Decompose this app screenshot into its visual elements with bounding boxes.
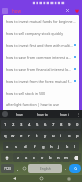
button[interactable]: q [1,131,9,140]
button[interactable]: how to invest first and then with multip… [3,39,79,51]
button[interactable]: Period [62,164,69,173]
button[interactable]: a [3,142,12,151]
staticText: y [44,133,47,139]
staticText: 8 [60,122,63,128]
button[interactable]: Comma [14,164,21,173]
staticText: how to invest first and then with multip… [6,43,73,48]
staticText: i [60,133,62,139]
button[interactable]: v [38,153,46,162]
staticText: how to invest mutual funds for beginners… [6,19,76,24]
staticText: 4 [28,122,31,128]
button[interactable]: ?123 [1,164,14,173]
button[interactable]: g [39,142,47,151]
button[interactable]: 2 [9,120,17,129]
staticText: d [24,144,27,150]
button[interactable]: p [73,131,81,140]
button[interactable]: r [25,131,33,140]
button[interactable]: how [8,110,31,118]
button[interactable]: c [30,153,38,162]
staticText: 0 [76,122,79,128]
button[interactable]: l [71,142,79,151]
button[interactable]: w [9,131,17,140]
button[interactable]: 4 [25,120,33,129]
staticText: how to sell company stock quickly [6,31,76,36]
button[interactable]: t [33,131,41,140]
button[interactable]: Menu [2,8,8,14]
staticText: how to invest from the forex mutual fund [6,79,73,84]
button[interactable]: how to save from financial interest loan… [3,63,79,75]
button[interactable]: y [41,131,49,140]
button[interactable]: 6 [41,120,49,129]
button[interactable]: n [54,153,62,162]
staticText: x [25,155,28,161]
button[interactable]: 7 [49,120,57,129]
staticText: ?123 [4,167,11,171]
staticText: u [52,133,55,139]
button[interactable]: 5 [33,120,41,129]
staticText: how [16,112,23,117]
button[interactable]: 1 [1,120,9,129]
button[interactable]: Shift [1,153,13,162]
button[interactable]: how to sell stock in 500 [3,87,79,99]
staticText: c [33,155,36,161]
button[interactable]: f [30,142,39,151]
button[interactable]: how i [53,110,75,118]
button[interactable]: how to invest mutual funds for beginners… [3,15,79,27]
staticText: o [68,133,71,139]
staticText: w [11,133,15,139]
staticText: afterlight function | how to use [6,102,76,107]
staticText: how to [37,112,48,117]
button[interactable]: b [46,153,54,162]
button[interactable]: j [55,142,63,151]
button[interactable]: z [13,153,22,162]
button[interactable]: h [47,142,55,151]
staticText: how to save from common interest and liv… [6,55,73,60]
button[interactable]: More suggestions [75,112,80,117]
button[interactable]: e [17,131,25,140]
button[interactable]: 8 [57,120,65,129]
staticText: h [50,144,53,150]
staticText: b [49,155,52,161]
button[interactable]: u [49,131,57,140]
button[interactable]: how to sell company stock quickly [3,27,79,39]
button[interactable]: Search [69,164,81,173]
button[interactable]: 0 [73,120,81,129]
button[interactable]: how to invest from the forex mutual fund [3,75,79,87]
button[interactable]: Back [0,175,28,182]
staticText: v [41,155,44,161]
staticText: how to save from financial interest loan… [6,67,73,72]
button[interactable]: i [57,131,65,140]
button[interactable]: Space [28,164,62,173]
staticText: 3 [20,122,23,128]
button[interactable]: d [21,142,30,151]
button[interactable]: 9 [65,120,73,129]
staticText: 6 [44,122,47,128]
staticText: 7 [52,122,55,128]
button[interactable]: Favorites [73,7,80,14]
button[interactable]: Keyboard settings [2,111,8,117]
button[interactable]: Recent apps [55,175,82,182]
button[interactable]: how to save from common interest and liv… [3,51,79,63]
staticText: z [17,155,19,161]
button[interactable]: Emoji [21,164,28,173]
button[interactable]: s [12,142,21,151]
staticText: ⋮ [76,112,80,117]
staticText: English [40,167,51,171]
button[interactable]: Home [28,175,55,182]
staticText: q [4,133,7,139]
staticText: 5 [36,122,39,128]
staticText: m [64,155,68,161]
button[interactable]: Backspace [70,153,81,162]
staticText: 9 [68,122,71,128]
button[interactable]: afterlight function | how to use [3,99,79,110]
staticText: g [42,144,45,150]
staticText: 1 [4,122,7,128]
button[interactable]: Clear query [64,7,71,14]
button[interactable]: m [62,153,70,162]
button[interactable]: o [65,131,73,140]
button[interactable]: how to [31,110,53,118]
button[interactable]: 3 [17,120,25,129]
button[interactable]: k [63,142,71,151]
button[interactable]: x [22,153,30,162]
staticText: e [20,133,23,139]
